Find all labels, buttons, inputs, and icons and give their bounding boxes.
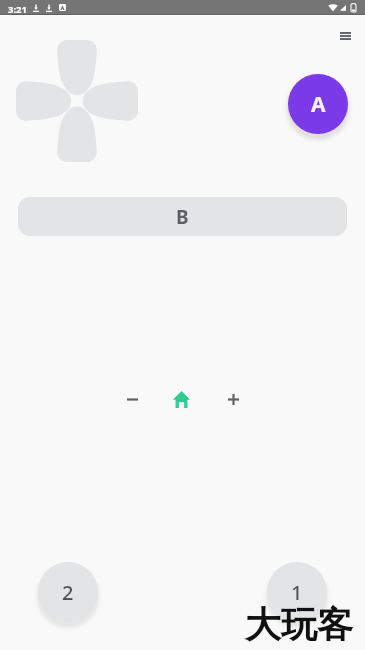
staticText: B — [176, 204, 189, 230]
button[interactable]: Home — [166, 384, 197, 415]
staticText: 1 — [291, 579, 303, 606]
staticText: A — [311, 90, 326, 119]
button[interactable]: Increase — [218, 384, 249, 415]
button[interactable]: B — [18, 197, 347, 236]
button[interactable]: Menu — [331, 21, 360, 50]
button[interactable]: A — [288, 74, 348, 134]
button[interactable]: D-pad — [13, 37, 141, 165]
button[interactable]: Decrease — [117, 384, 148, 415]
staticText: 大玩客 — [245, 602, 353, 647]
staticText: 3:21 — [8, 3, 27, 16]
button[interactable]: 1 — [267, 562, 327, 622]
staticText: 2 — [62, 579, 74, 606]
button[interactable]: 2 — [38, 562, 98, 622]
